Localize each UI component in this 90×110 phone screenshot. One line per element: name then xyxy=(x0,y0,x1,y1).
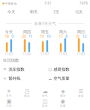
button[interactable]: ☀ xyxy=(0,74,45,83)
button[interactable]: ◫ xyxy=(36,98,54,108)
staticText: 周六 xyxy=(59,29,67,34)
button[interactable]: ◳ xyxy=(18,88,36,98)
staticText: 19 xyxy=(40,33,44,39)
staticText: 生活指数 xyxy=(3,58,19,63)
staticText: 12 xyxy=(82,33,86,39)
staticText: ☰ xyxy=(78,88,83,94)
staticText: 11 xyxy=(28,33,32,39)
staticText: 15天 xyxy=(75,9,83,15)
button[interactable]: ◈ xyxy=(54,88,72,98)
staticText: ◈ xyxy=(61,88,65,94)
staticText: 21 xyxy=(76,33,80,39)
staticText: 10 xyxy=(46,33,50,39)
button[interactable]: 明天 xyxy=(22,7,45,17)
staticText: 20 xyxy=(22,33,26,39)
staticText: 未来7天天气 xyxy=(34,21,56,26)
staticText: ☀ xyxy=(3,76,7,81)
staticText: 更多 xyxy=(78,94,84,98)
staticText: ☺ xyxy=(48,67,52,72)
staticText: 17 xyxy=(59,33,63,39)
button[interactable]: ☰ xyxy=(72,88,90,98)
staticText: 11/06 xyxy=(22,52,31,56)
staticText: 雷达 xyxy=(24,94,30,98)
staticText: 紫外线 xyxy=(9,76,21,81)
staticText: 今天 xyxy=(5,29,13,34)
button[interactable]: ☂ xyxy=(0,65,45,74)
staticText: 天气 xyxy=(6,94,12,98)
staticText: ◫ xyxy=(42,98,47,104)
staticText: 周五 xyxy=(41,29,49,34)
staticText: 穿衣 xyxy=(42,104,48,108)
staticText: 100% xyxy=(79,2,87,5)
button[interactable]: ◉ xyxy=(54,98,72,108)
staticText: 周日 xyxy=(77,29,85,34)
staticText: 11/05 xyxy=(4,52,13,56)
staticText: 11/07 xyxy=(40,52,49,56)
staticText: ☀ xyxy=(6,88,11,94)
staticText: 设置 xyxy=(60,104,66,108)
staticText: 今天 xyxy=(7,9,15,14)
button[interactable]: ☁ xyxy=(36,88,54,98)
staticText: 9:41 xyxy=(45,2,52,5)
button[interactable]: ▣ xyxy=(0,98,18,108)
staticText: 8 xyxy=(65,33,67,39)
staticText: 7天 xyxy=(53,9,59,15)
button[interactable]: 15天 xyxy=(67,7,90,17)
button[interactable]: 今天 xyxy=(0,7,22,17)
staticText: 11/09 xyxy=(76,52,85,56)
staticText: 周四 xyxy=(23,29,31,34)
staticText: 中国移动 xyxy=(5,2,17,5)
staticText: 空气质量 xyxy=(54,76,70,81)
staticText: ☁ xyxy=(48,76,52,81)
staticText: 日历 xyxy=(6,104,12,108)
staticText: ☂ xyxy=(3,67,7,72)
button[interactable]: ☁ xyxy=(45,74,90,83)
staticText: ◳ xyxy=(24,88,29,94)
staticText: 空气 xyxy=(42,94,48,98)
staticText: 明天 xyxy=(30,9,38,14)
staticText: ◉ xyxy=(60,98,65,104)
staticText: 9 xyxy=(11,33,13,39)
staticText: 洗车指数 xyxy=(9,67,25,72)
staticText: ▣ xyxy=(6,98,11,104)
staticText: 感冒指数 xyxy=(54,67,70,72)
button[interactable]: ☺ xyxy=(45,65,90,74)
staticText: 18 xyxy=(5,33,9,39)
staticText: 11/08 xyxy=(58,52,67,56)
button[interactable]: ☀ xyxy=(0,88,18,98)
button[interactable]: 7天 xyxy=(45,7,67,17)
staticText: 潮汐 xyxy=(60,94,66,98)
staticText: ☁ xyxy=(42,88,47,94)
